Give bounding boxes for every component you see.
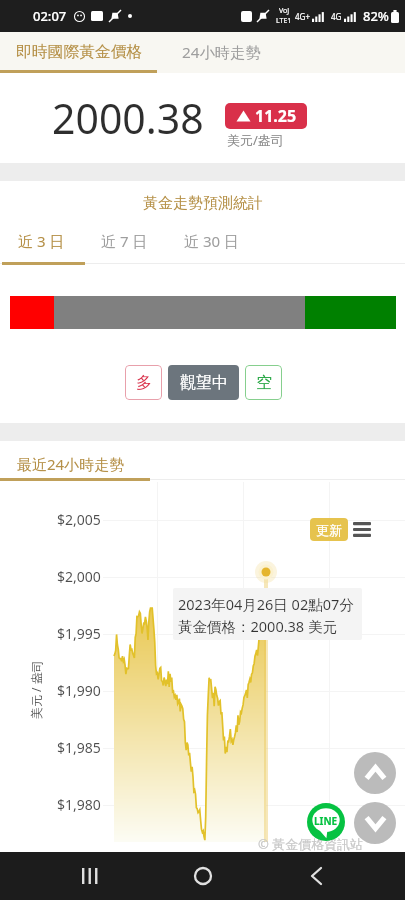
staticText: 黃金價格：2000.38 美元 (178, 616, 337, 636)
button[interactable]: Scroll up (354, 752, 396, 794)
staticText: $2,005 (57, 510, 101, 529)
staticText: 近 3 日 (18, 231, 65, 251)
staticText: 即時國際黃金價格 (16, 42, 143, 62)
staticText: 2000.38 (52, 90, 204, 146)
staticText: LTE1 (276, 16, 292, 26)
staticText: 02:07 (33, 7, 67, 25)
button[interactable] (0, 221, 85, 263)
staticText: 82% (363, 7, 389, 25)
staticText: 美元/盎司 (227, 131, 284, 149)
button[interactable]: 11.25 (225, 103, 307, 129)
staticText: $1,990 (57, 681, 101, 700)
staticText: 4G (331, 11, 342, 22)
staticText: © 黃金價格資訊站 (258, 835, 364, 853)
staticText: VoJ (279, 6, 290, 16)
staticText: 更新 (316, 522, 342, 538)
staticText: LINE (314, 814, 338, 828)
button[interactable]: Recents (65, 852, 113, 900)
staticText: $1,995 (57, 624, 101, 643)
button[interactable] (0, 441, 150, 481)
button[interactable]: Share to LINE (307, 803, 345, 841)
staticText: 最近24小時走勢 (17, 454, 125, 474)
button[interactable]: Scroll down (354, 802, 396, 844)
staticText: 多 (136, 373, 152, 393)
staticText: 4G+ (295, 11, 310, 22)
staticText: 2023年04月26日 02點07分 (178, 594, 354, 614)
staticText: 近 30 日 (184, 231, 239, 251)
staticText: 觀望中 (180, 373, 228, 393)
button[interactable]: 更新 (310, 518, 348, 541)
staticText: 黃金走勢預測統計 (143, 194, 263, 213)
staticText: $2,000 (57, 567, 101, 586)
staticText: 11.25 (255, 105, 297, 127)
button[interactable] (0, 32, 157, 73)
staticText: 近 7 日 (101, 231, 148, 251)
button[interactable]: 多 (125, 365, 162, 400)
button[interactable] (168, 221, 258, 263)
button[interactable] (85, 221, 168, 263)
staticText: 24小時走勢 (182, 42, 261, 63)
button[interactable]: 空 (245, 365, 282, 400)
button[interactable]: Back (292, 852, 340, 900)
button[interactable]: 觀望中 (168, 365, 239, 400)
staticText: 美元 / 盎司 (28, 660, 44, 719)
button[interactable]: Home (179, 852, 227, 900)
staticText: $1,980 (57, 795, 101, 814)
button[interactable] (157, 32, 307, 73)
button[interactable]: Menu (351, 518, 373, 541)
staticText: 空 (256, 373, 272, 393)
staticText: $1,985 (57, 738, 101, 757)
